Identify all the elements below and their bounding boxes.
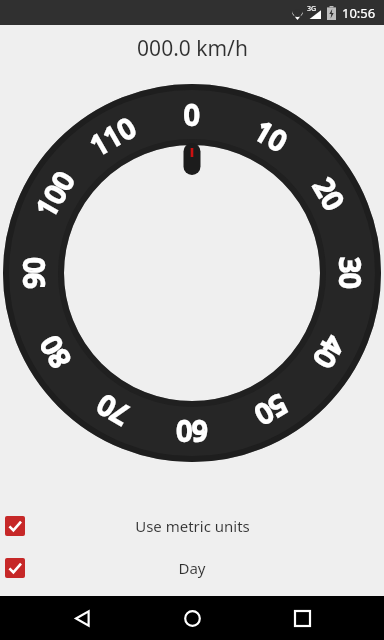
button[interactable]: Recents: [274, 596, 330, 640]
staticText: 10:56: [342, 4, 376, 22]
button[interactable]: Day: [0, 556, 384, 580]
button[interactable]: Back: [54, 596, 110, 640]
button[interactable]: Use metric units: [0, 514, 384, 538]
staticText: Use metric units: [135, 516, 250, 536]
button[interactable]: Home: [164, 596, 220, 640]
staticText: 000.0 km/h: [137, 34, 248, 63]
staticText: 3G: [307, 4, 317, 14]
staticText: Day: [178, 558, 206, 578]
